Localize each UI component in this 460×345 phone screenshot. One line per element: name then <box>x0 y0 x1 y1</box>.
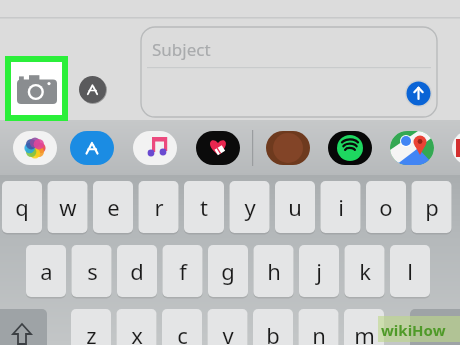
button[interactable]: o <box>366 181 406 233</box>
button[interactable]: g <box>208 245 248 297</box>
staticText: c <box>177 320 188 345</box>
staticText: t <box>200 192 208 222</box>
staticText: wikiHow <box>381 320 446 340</box>
button[interactable]: Shift <box>0 309 47 345</box>
button[interactable]: a <box>26 245 66 297</box>
button[interactable]: z <box>71 309 111 345</box>
button[interactable]: k <box>345 245 385 297</box>
button[interactable]: u <box>275 181 315 233</box>
button[interactable]: h <box>254 245 294 297</box>
staticText: q <box>15 192 29 222</box>
button[interactable]: Send <box>405 80 432 107</box>
button[interactable]: y <box>230 181 270 233</box>
button[interactable]: r <box>139 181 179 233</box>
button[interactable]: Camera <box>11 62 62 115</box>
button[interactable]: j <box>299 245 339 297</box>
button[interactable]: f <box>163 245 203 297</box>
button[interactable]: x <box>117 309 157 345</box>
button[interactable]: b <box>253 309 293 345</box>
staticText: d <box>130 256 144 286</box>
button[interactable]: t <box>184 181 224 233</box>
button[interactable]: e <box>93 181 133 233</box>
staticText: j <box>316 256 322 286</box>
staticText: l <box>407 256 413 286</box>
staticText: z <box>86 320 97 345</box>
button[interactable]: l <box>390 245 430 297</box>
staticText: a <box>40 256 53 286</box>
staticText: r <box>154 192 164 222</box>
staticText: f <box>179 256 187 286</box>
staticText: y <box>244 192 256 222</box>
staticText: m <box>354 320 375 345</box>
staticText: h <box>267 256 281 286</box>
button[interactable]: c <box>162 309 202 345</box>
button[interactable]: p <box>412 181 452 233</box>
staticText: e <box>107 192 120 222</box>
button[interactable]: i <box>321 181 361 233</box>
staticText: p <box>425 192 439 222</box>
button[interactable]: Subject field <box>141 27 437 117</box>
staticText: k <box>359 256 371 286</box>
staticText: n <box>312 320 326 345</box>
staticText: s <box>87 256 98 286</box>
button[interactable]: w <box>48 181 88 233</box>
button[interactable]: n <box>299 309 339 345</box>
button[interactable]: v <box>208 309 248 345</box>
button[interactable]: m <box>344 309 384 345</box>
staticText: o <box>379 192 393 222</box>
button[interactable]: d <box>117 245 157 297</box>
button[interactable]: App Store <box>78 75 107 104</box>
button[interactable]: q <box>2 181 42 233</box>
staticText: w <box>59 192 77 222</box>
staticText: x <box>131 320 143 345</box>
button[interactable]: s <box>72 245 112 297</box>
staticText: g <box>221 256 235 286</box>
staticText: b <box>266 320 280 345</box>
button[interactable]: Backspace <box>410 309 460 345</box>
staticText: u <box>288 192 302 222</box>
staticText: Subject <box>152 38 211 61</box>
staticText: i <box>338 192 344 222</box>
staticText: v <box>222 320 234 345</box>
